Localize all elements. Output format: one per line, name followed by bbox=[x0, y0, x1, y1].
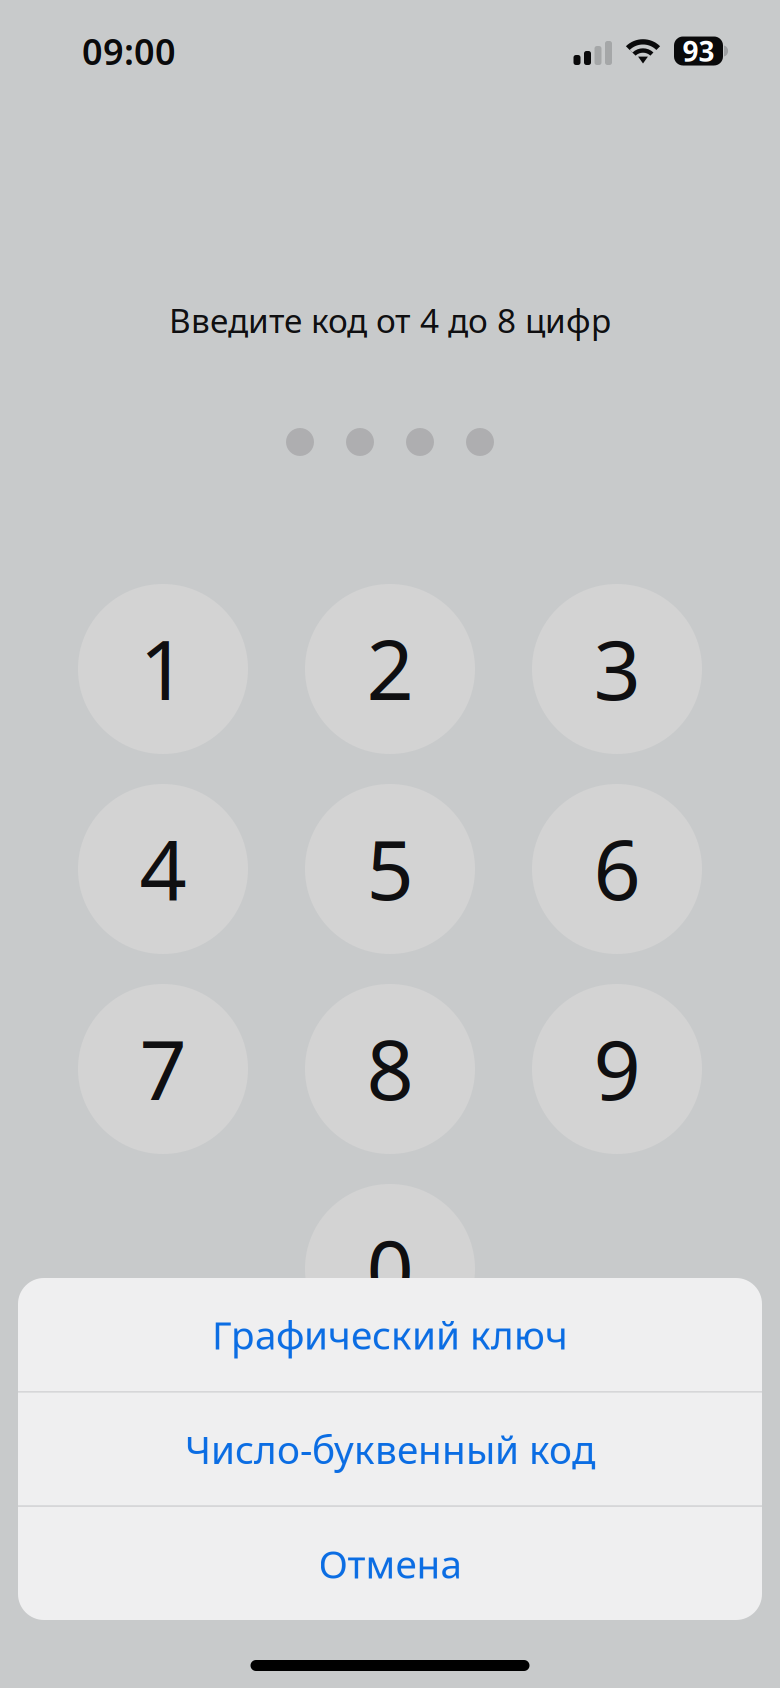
staticText: Введите код от 4 до 8 цифр bbox=[169, 298, 611, 342]
button[interactable]: 8 bbox=[305, 984, 475, 1154]
staticText: 6 bbox=[593, 813, 640, 923]
button[interactable]: 2 bbox=[305, 584, 475, 754]
button[interactable]: 7 bbox=[78, 984, 248, 1154]
button[interactable]: 4 bbox=[78, 784, 248, 954]
staticText: 09:00 bbox=[82, 27, 176, 75]
staticText: Отмена bbox=[318, 1538, 461, 1589]
staticText: 5 bbox=[366, 813, 413, 923]
button[interactable]: 5 bbox=[305, 784, 475, 954]
staticText: 2 bbox=[366, 613, 413, 723]
button[interactable]: 9 bbox=[532, 984, 702, 1154]
staticText: 9 bbox=[593, 1013, 640, 1123]
button[interactable]: Отмена bbox=[18, 1507, 762, 1620]
staticText: 7 bbox=[139, 1013, 186, 1123]
staticText: 8 bbox=[366, 1013, 413, 1123]
staticText: 4 bbox=[139, 813, 186, 923]
button[interactable]: Число-буквенный код bbox=[18, 1392, 762, 1505]
staticText: Число-буквенный код bbox=[185, 1423, 595, 1475]
button[interactable]: 1 bbox=[78, 584, 248, 754]
button[interactable]: 3 bbox=[532, 584, 702, 754]
button[interactable]: 6 bbox=[532, 784, 702, 954]
staticText: 3 bbox=[593, 613, 640, 723]
staticText: 93 bbox=[682, 32, 714, 70]
staticText: 0 bbox=[366, 1213, 413, 1323]
button[interactable]: 0 bbox=[305, 1184, 475, 1354]
staticText: Графический ключ bbox=[212, 1309, 568, 1360]
staticText: 1 bbox=[139, 613, 186, 723]
button[interactable]: Графический ключ bbox=[18, 1278, 762, 1391]
